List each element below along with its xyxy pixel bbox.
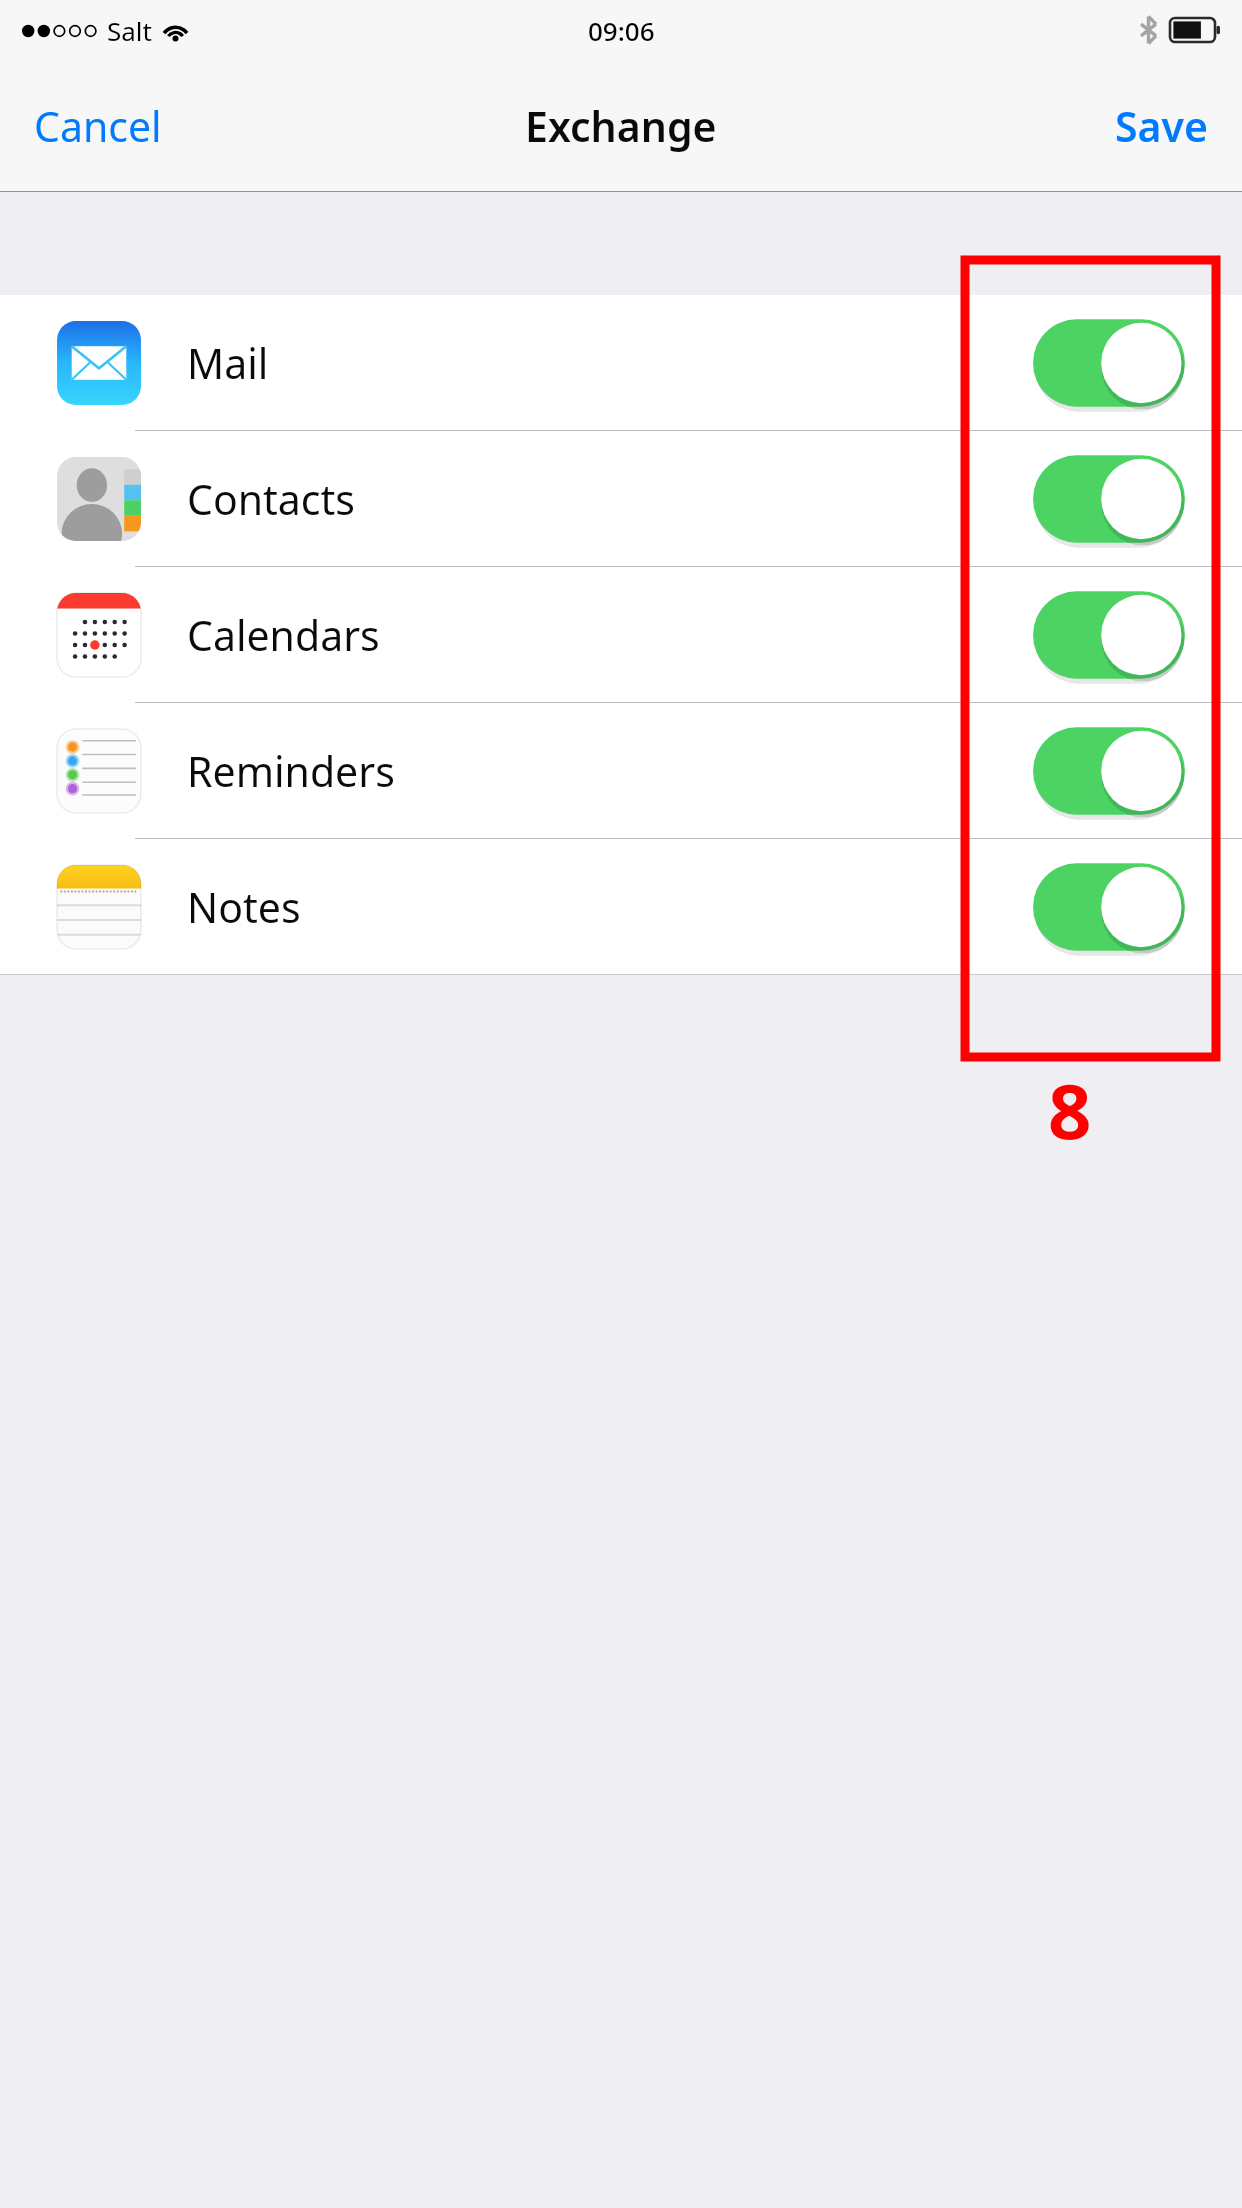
button[interactable]: Contacts: [0, 431, 1242, 566]
staticText: Mail: [187, 335, 269, 391]
staticText: Reminders: [187, 743, 395, 799]
button[interactable]: Reminders: [0, 703, 1242, 838]
button[interactable]: Toggle: [1033, 726, 1185, 816]
button[interactable]: Save: [1093, 82, 1242, 170]
button[interactable]: Toggle: [1033, 454, 1185, 544]
staticText: 09:06: [588, 13, 655, 48]
staticText: Cancel: [34, 98, 162, 154]
button[interactable]: Toggle: [1033, 862, 1185, 952]
staticText: Contacts: [187, 471, 355, 527]
staticText: Exchange: [525, 98, 717, 154]
button[interactable]: Toggle: [1033, 318, 1185, 408]
staticText: Salt: [107, 13, 152, 48]
staticText: 8: [1048, 1058, 1092, 1162]
button[interactable]: Calendars: [0, 567, 1242, 702]
staticText: Notes: [187, 879, 301, 935]
staticText: Save: [1115, 98, 1208, 154]
button[interactable]: Cancel: [0, 82, 184, 170]
button[interactable]: Mail: [0, 295, 1242, 430]
button[interactable]: Toggle: [1033, 590, 1185, 680]
button[interactable]: Notes: [0, 839, 1242, 974]
staticText: Calendars: [187, 607, 380, 663]
